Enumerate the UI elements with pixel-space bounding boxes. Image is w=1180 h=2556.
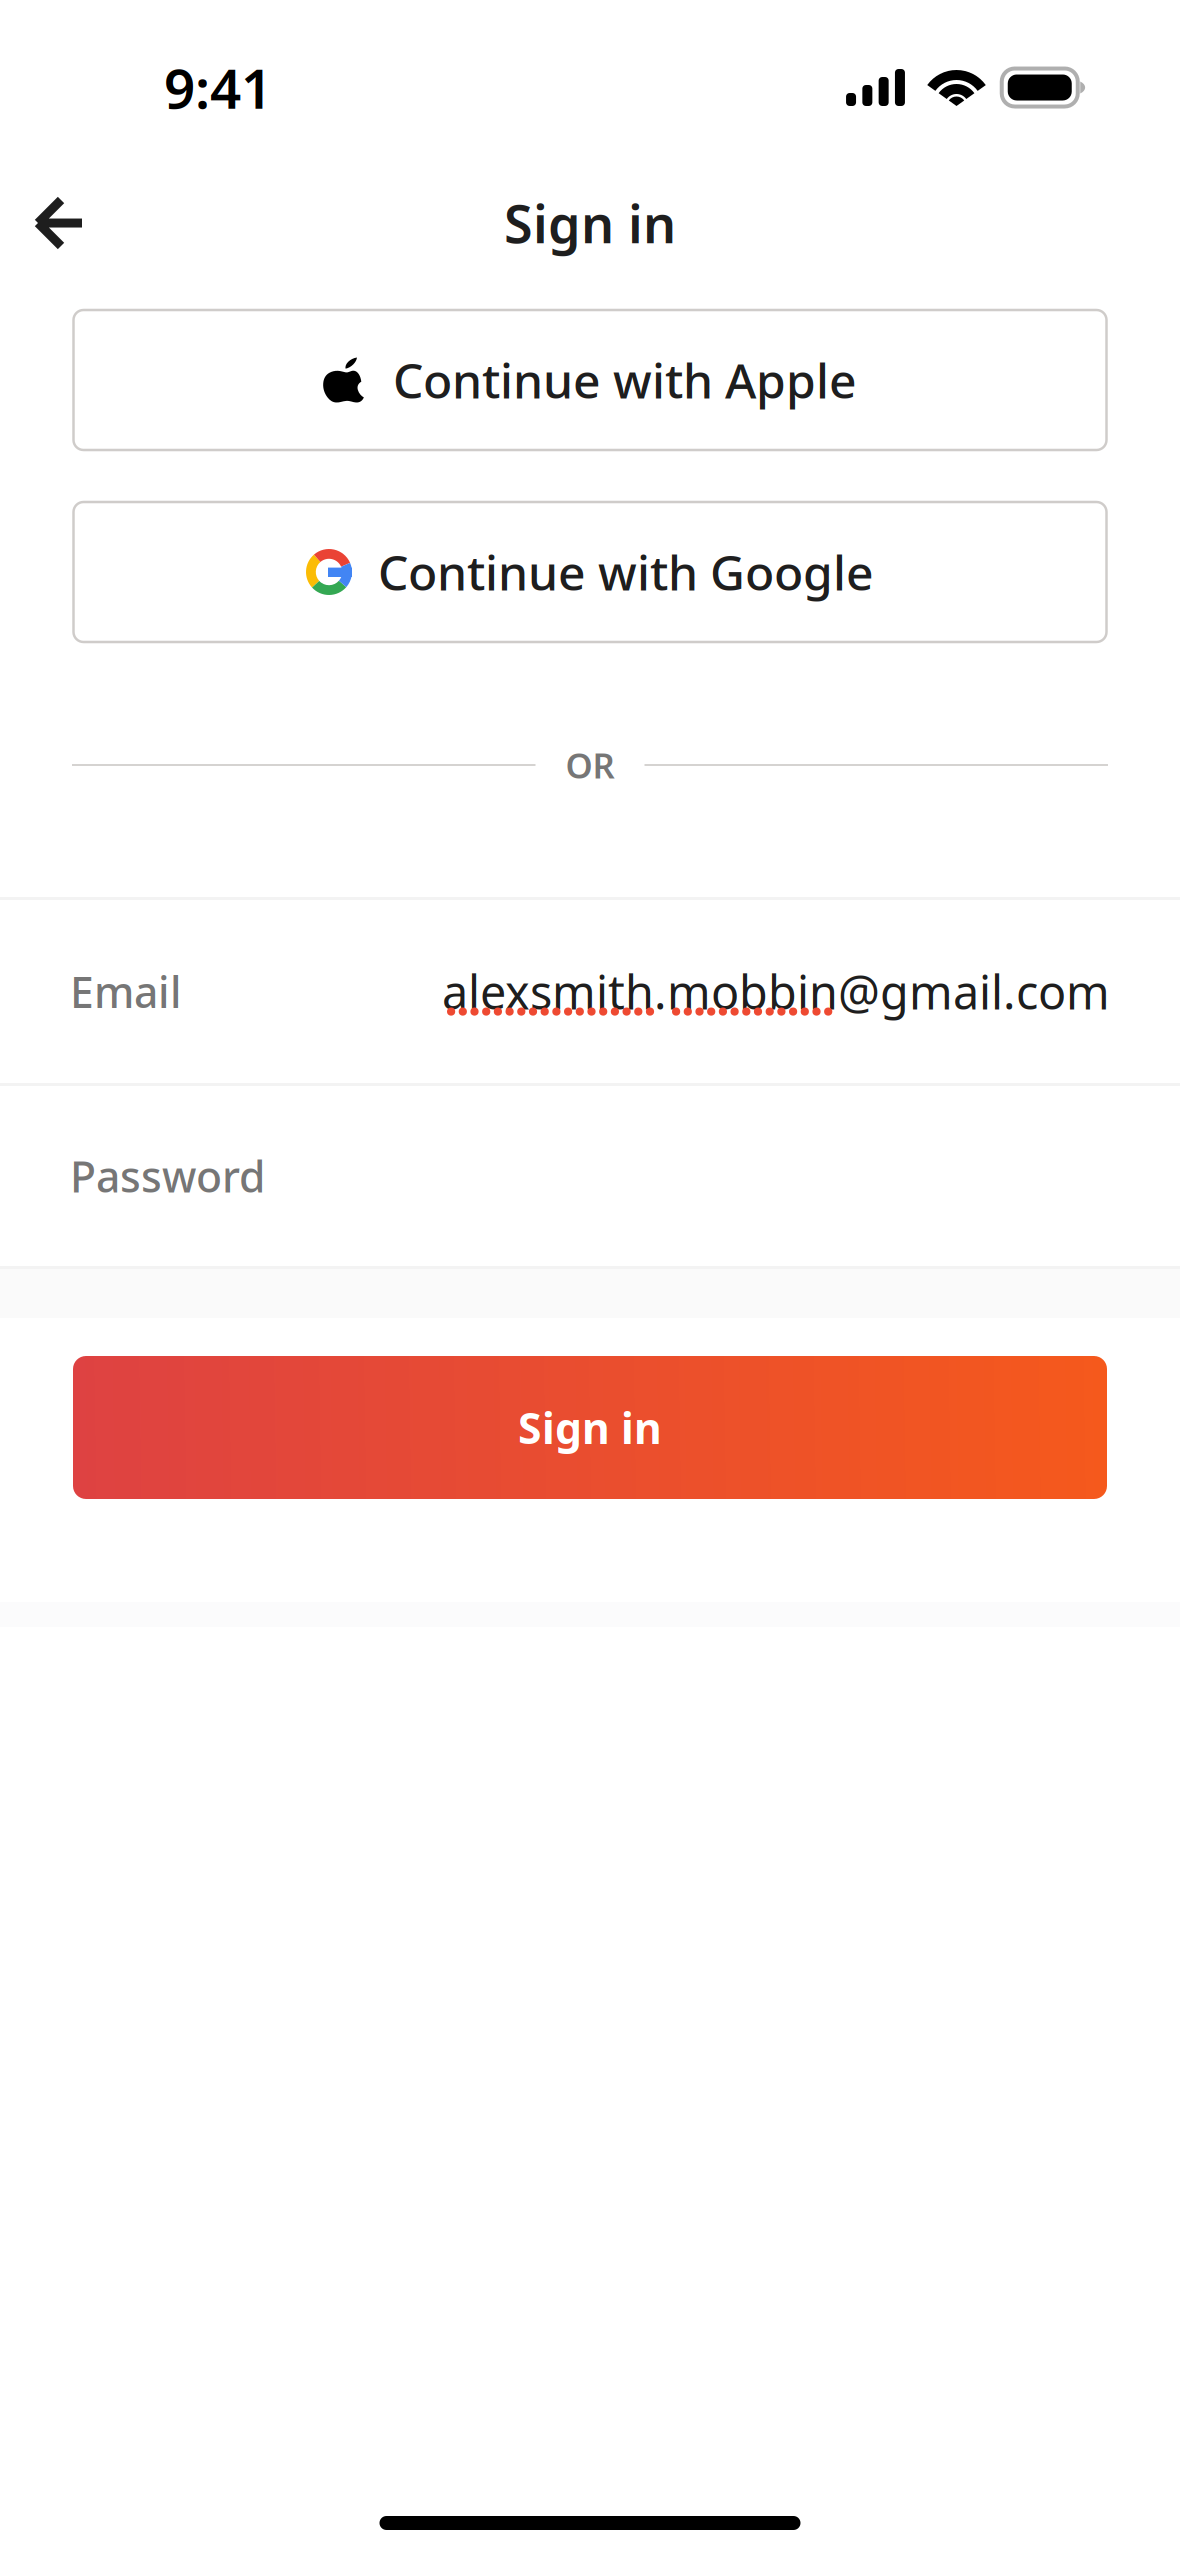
button[interactable]: Continue with Apple [73, 310, 1106, 450]
button[interactable]: Continue with Google [73, 502, 1106, 642]
staticText: Continue with Google [378, 540, 874, 604]
staticText: Sign in [504, 188, 676, 258]
staticText: 9:41 [164, 51, 272, 124]
button[interactable]: Back [0, 168, 120, 278]
staticText: Email [70, 963, 182, 1020]
staticText: Sign in [518, 1399, 662, 1456]
staticText: OR [565, 742, 614, 788]
button[interactable]: Email [0, 900, 1180, 1083]
button[interactable]: Sign in [73, 1356, 1107, 1499]
staticText: Continue with Apple [393, 348, 857, 412]
staticText: Password [70, 1148, 265, 1204]
staticText: alexsmith.mobbin@gmail.com [442, 960, 1110, 1022]
button[interactable]: Password [0, 1086, 1180, 1266]
